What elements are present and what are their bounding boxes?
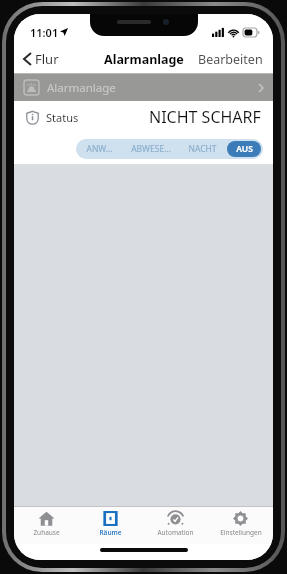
staticText: Automation bbox=[157, 528, 194, 537]
staticText: Räume bbox=[99, 528, 122, 537]
button[interactable]: Automation bbox=[143, 507, 208, 544]
staticText: ANW… bbox=[86, 143, 113, 155]
staticText: Alarmanlage bbox=[104, 51, 184, 68]
button[interactable]: Räume bbox=[78, 507, 143, 544]
button[interactable]: Bearbeiten bbox=[188, 46, 273, 73]
button[interactable]: Alarmanlage bbox=[14, 74, 273, 101]
staticText: 11:01 bbox=[30, 25, 59, 40]
staticText: ABWESE… bbox=[131, 143, 171, 155]
staticText: NICHT SCHARF bbox=[149, 106, 261, 128]
staticText: Status bbox=[46, 110, 79, 125]
button[interactable]: Status bbox=[14, 101, 273, 133]
button[interactable]: NACHT bbox=[181, 141, 223, 157]
staticText: Zuhause bbox=[33, 528, 60, 537]
button[interactable]: Einstellungen bbox=[208, 507, 273, 544]
staticText: Alarmanlage bbox=[47, 80, 116, 96]
button[interactable]: AUS bbox=[227, 141, 261, 157]
button[interactable]: ANW… bbox=[78, 141, 120, 157]
staticText: NACHT bbox=[188, 143, 217, 155]
button[interactable]: Zuhause bbox=[14, 507, 78, 544]
button[interactable]: Flur bbox=[14, 46, 67, 72]
staticText: Flur bbox=[35, 50, 59, 68]
staticText: Einstellungen bbox=[220, 528, 262, 537]
staticText: AUS bbox=[236, 143, 253, 155]
button[interactable]: ABWESE… bbox=[124, 141, 177, 157]
